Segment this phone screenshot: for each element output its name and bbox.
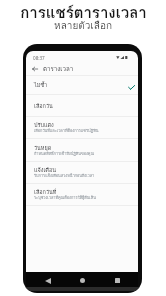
button[interactable]: ไม่ซ้ำ	[26, 76, 138, 95]
staticText: ตารางเวลา	[43, 64, 74, 74]
staticText: ระบุช่วงเวลาที่คุณต้องการให้ผู้อื่นเห็น	[34, 195, 96, 200]
staticText: ไม่ซ้ำ	[34, 81, 48, 90]
button[interactable]: วันหยุด	[26, 139, 138, 162]
button[interactable]: Recents	[110, 272, 125, 287]
button[interactable]: Back	[40, 272, 55, 287]
button[interactable]: Home	[75, 272, 90, 287]
staticText: ปรับแต่ง	[34, 121, 54, 130]
staticText: กำหนดสิทธิ์การเข้าถึงปฏิทินของคุณ	[34, 151, 95, 156]
button[interactable]: ปรับแต่ง	[26, 117, 138, 139]
staticText: รับการแจ้งเตือนล่วงหน้าก่อนถึงเวลา	[34, 173, 95, 178]
button[interactable]: เลือกวัน	[26, 95, 138, 117]
staticText: การแชร์ตารางเวลา	[20, 1, 147, 25]
button[interactable]: แจ้งเตือน	[26, 162, 138, 184]
staticText: เลือกวันที่และเวลาที่ต้องการแชร์ปฏิทิน	[34, 128, 99, 133]
staticText: แจ้งเตือน	[34, 166, 56, 175]
staticText: 08:37	[33, 55, 45, 61]
button[interactable]: Back	[29, 63, 41, 75]
staticText: หลายตัวเลือก	[54, 18, 112, 34]
staticText: เลือกวัน	[34, 102, 53, 111]
staticText: วันหยุด	[34, 144, 52, 153]
staticText: เลือกวันที่	[34, 188, 57, 197]
button[interactable]: เลือกวันที่	[26, 184, 138, 206]
